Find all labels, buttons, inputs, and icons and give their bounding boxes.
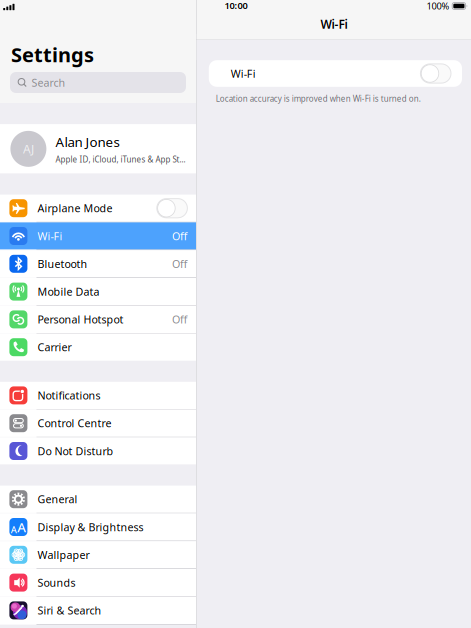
staticText: 100% bbox=[426, 0, 449, 12]
button[interactable]: Bluetooth bbox=[0, 250, 196, 277]
button[interactable]: Siri & Search bbox=[0, 597, 196, 624]
staticText: Off bbox=[172, 312, 187, 326]
button[interactable]: Airplane Mode bbox=[0, 195, 196, 222]
staticText: Do Not Disturb bbox=[37, 444, 113, 458]
staticText: Wi-Fi bbox=[37, 229, 62, 243]
staticText: Settings bbox=[11, 41, 94, 68]
staticText: 10:00 bbox=[224, 0, 247, 12]
button[interactable]: Mobile Data bbox=[0, 278, 196, 305]
button[interactable]: Notifications bbox=[0, 382, 196, 409]
staticText: A bbox=[17, 518, 26, 536]
staticText: Sounds bbox=[37, 575, 75, 590]
button[interactable]: Personal Hotspot bbox=[0, 306, 196, 333]
staticText: Wi-Fi bbox=[320, 16, 347, 32]
staticText: Carrier bbox=[37, 340, 71, 354]
staticText: Wi-Fi bbox=[231, 66, 256, 81]
button[interactable]: Wi-Fi bbox=[0, 222, 196, 250]
button[interactable]: Wi-Fi bbox=[209, 60, 462, 87]
staticText: Off bbox=[172, 257, 187, 271]
button[interactable]: Sounds bbox=[0, 569, 196, 596]
staticText: AJ bbox=[23, 141, 34, 157]
staticText: Notifications bbox=[37, 388, 100, 402]
staticText: Search bbox=[31, 75, 65, 90]
staticText: Wallpaper bbox=[37, 548, 89, 562]
staticText: Bluetooth bbox=[37, 257, 87, 271]
button[interactable]: Search bbox=[10, 72, 186, 93]
staticText: Siri & Search bbox=[37, 603, 101, 617]
staticText: General bbox=[37, 492, 77, 506]
staticText: Off bbox=[172, 229, 187, 243]
staticText: Display & Brightness bbox=[37, 520, 143, 534]
staticText: Personal Hotspot bbox=[37, 312, 123, 326]
button[interactable]: A bbox=[0, 513, 196, 541]
staticText: Alan Jones bbox=[56, 133, 120, 151]
staticText: A bbox=[11, 523, 17, 536]
button[interactable]: Do Not Disturb bbox=[0, 437, 196, 465]
button[interactable]: Control Centre bbox=[0, 410, 196, 437]
button[interactable]: General bbox=[0, 486, 196, 513]
staticText: Mobile Data bbox=[37, 284, 99, 299]
button[interactable]: AJ bbox=[0, 124, 196, 174]
staticText: Location accuracy is improved when Wi-Fi… bbox=[216, 93, 421, 104]
staticText: Control Centre bbox=[37, 416, 111, 430]
staticText: Airplane Mode bbox=[37, 201, 112, 215]
button[interactable]: Carrier bbox=[0, 334, 196, 361]
button[interactable]: Wallpaper bbox=[0, 541, 196, 568]
staticText: Apple ID, iCloud, iTunes & App St... bbox=[56, 154, 186, 165]
